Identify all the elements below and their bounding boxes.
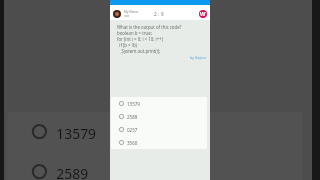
staticText: System.out.print(i); (117, 48, 161, 54)
staticText: 13579 (127, 101, 140, 107)
staticText: 8 (161, 11, 164, 18)
button[interactable]: 13579 (7, 112, 303, 152)
button[interactable]: 2589 (7, 152, 303, 180)
staticText: boolean b = true; (117, 30, 152, 36)
staticText: What is the output of this code? (117, 24, 182, 30)
button[interactable]: 3560 (111, 136, 207, 149)
staticText: for (int i = 0; i < 10; i++) (117, 36, 164, 42)
staticText: W (200, 10, 206, 18)
button[interactable]: Share (191, 10, 197, 16)
staticText: 13579 (56, 124, 96, 142)
button[interactable]: Profile photo (113, 10, 121, 18)
button[interactable]: by Rajeev (190, 55, 207, 60)
button[interactable]: 0257 (111, 123, 207, 136)
staticText: 0257 (127, 127, 138, 133)
staticText: 2589 (56, 164, 90, 180)
button[interactable]: App logo (199, 10, 207, 18)
staticText: if (b = !b) (117, 42, 137, 48)
staticText: 2589 (127, 114, 138, 120)
staticText: My Name (124, 10, 139, 14)
button[interactable]: 13579 (111, 97, 207, 110)
staticText: now (124, 14, 130, 18)
button[interactable]: 2589 (111, 110, 207, 123)
staticText: 2 (154, 11, 157, 18)
staticText: 3560 (127, 140, 138, 146)
staticText: : (158, 11, 160, 18)
